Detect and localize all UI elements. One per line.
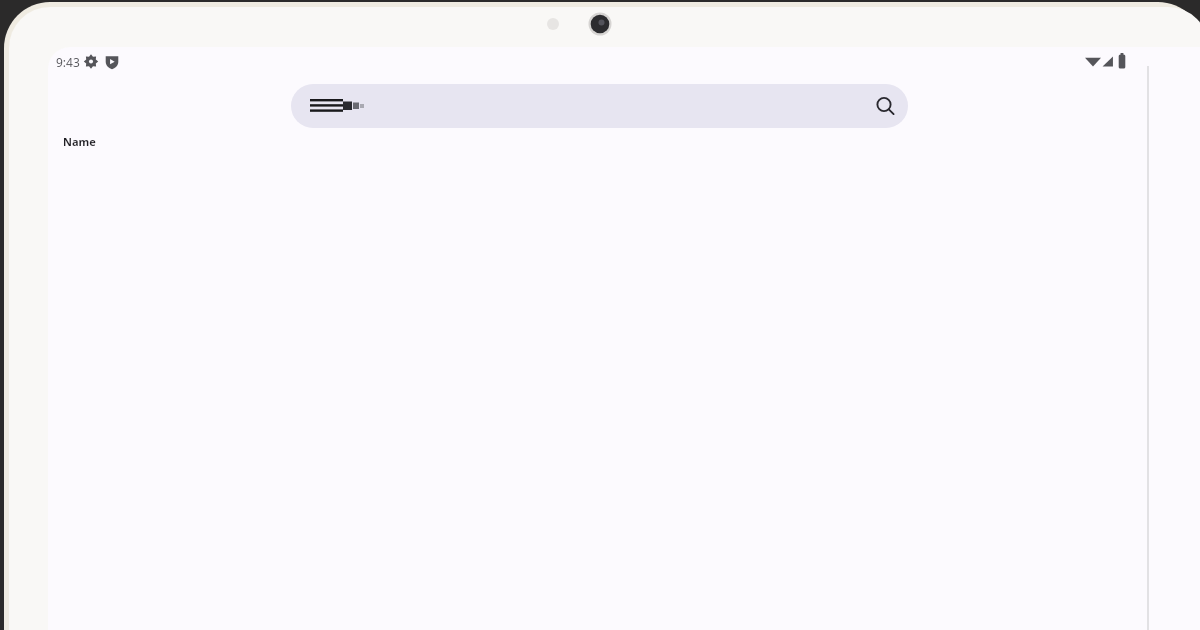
staticText: Name xyxy=(63,134,96,149)
button[interactable]: Search xyxy=(291,84,908,128)
staticText: 9:43 xyxy=(56,54,80,70)
button[interactable]: Name xyxy=(63,134,96,149)
